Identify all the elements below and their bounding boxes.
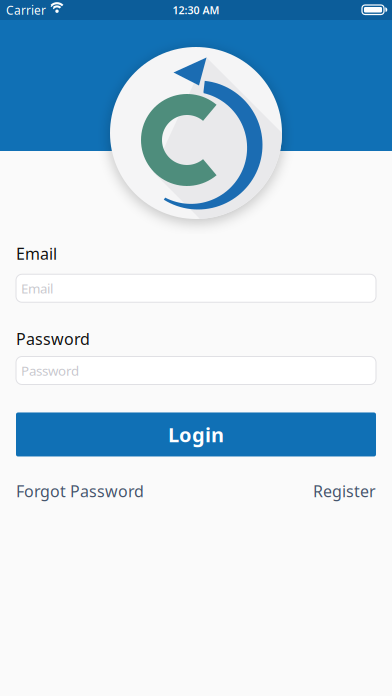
- button[interactable]: Forgot Password: [16, 480, 144, 502]
- staticText: 12:30 AM: [172, 3, 219, 17]
- button[interactable]: Login: [16, 412, 376, 456]
- staticText: Forgot Password: [16, 480, 144, 502]
- button[interactable]: Email: [16, 274, 376, 302]
- staticText: Carrier: [6, 2, 46, 18]
- button[interactable]: Register: [313, 480, 376, 502]
- staticText: Password: [16, 328, 90, 349]
- staticText: Login: [168, 421, 224, 448]
- staticText: Email: [21, 279, 53, 297]
- staticText: Password: [21, 362, 79, 379]
- staticText: Register: [313, 480, 376, 502]
- button[interactable]: Password: [16, 356, 376, 384]
- staticText: Email: [16, 243, 57, 264]
